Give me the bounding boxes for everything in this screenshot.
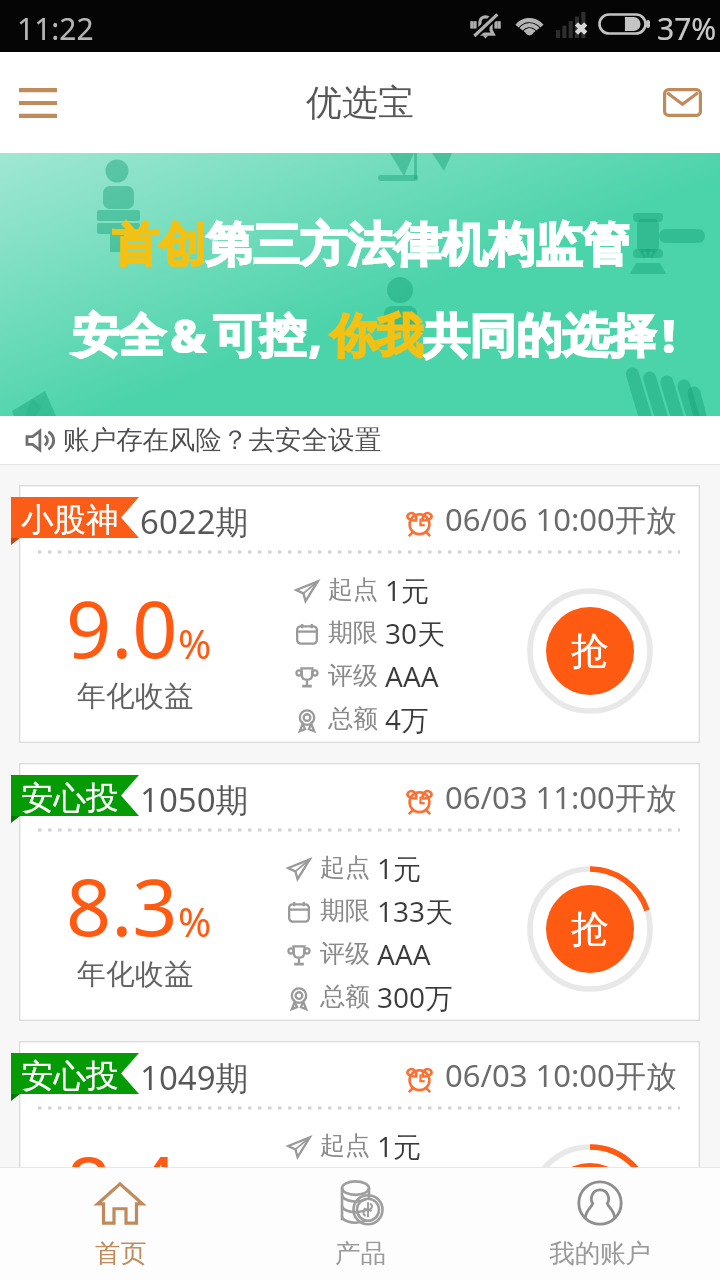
staticText: 8.3: [66, 852, 178, 960]
staticText: 起点: [320, 852, 370, 883]
button[interactable]: 1049期: [19, 1041, 700, 1280]
staticText: AAA: [385, 657, 439, 695]
staticText: 06/03 10:00开放: [445, 1054, 677, 1096]
staticText: 37%: [657, 8, 717, 49]
staticText: ,: [308, 303, 323, 366]
staticText: 我的账户: [549, 1237, 651, 1269]
button[interactable]: 1050期: [19, 763, 700, 1021]
button[interactable]: 账户存在风险？去安全设置: [0, 416, 720, 465]
staticText: 30天: [385, 614, 446, 652]
staticText: 抢: [571, 627, 609, 675]
button[interactable]: 首页: [0, 1168, 240, 1280]
staticText: 产品: [335, 1237, 386, 1269]
staticText: 总额: [320, 1259, 370, 1280]
staticText: 安心投: [21, 1056, 119, 1097]
staticText: 起点: [320, 1130, 370, 1161]
staticText: 账户存在风险？去安全设置: [63, 423, 381, 456]
staticText: 你我: [330, 307, 423, 366]
staticText: 1049期: [140, 1055, 249, 1100]
staticText: 优选宝: [306, 80, 414, 125]
staticText: %: [178, 616, 212, 670]
button[interactable]: Menu: [0, 52, 76, 153]
staticText: 首创: [112, 216, 206, 275]
staticText: &: [170, 303, 208, 366]
button[interactable]: 6022期: [19, 485, 700, 743]
staticText: 期限: [328, 617, 378, 648]
staticText: 首页: [95, 1237, 146, 1269]
staticText: 300万: [377, 978, 454, 1016]
staticText: 1元: [377, 1127, 422, 1165]
staticText: 评级: [320, 1216, 370, 1247]
button[interactable]: Messages: [644, 52, 720, 153]
staticText: 133天: [377, 892, 454, 930]
staticText: 300万: [377, 1256, 454, 1280]
staticText: 共同的选择: [423, 307, 656, 366]
staticText: 抢: [571, 905, 609, 953]
staticText: 1050期: [140, 777, 249, 822]
staticText: 年化收益: [77, 956, 193, 993]
staticText: 小股神: [21, 500, 119, 541]
staticText: 06/03 11:00开放: [445, 776, 677, 818]
staticText: 评级: [328, 660, 378, 691]
staticText: 年化收益: [77, 1234, 193, 1271]
staticText: 总额: [328, 703, 378, 734]
button[interactable]: 抢: [527, 588, 653, 714]
staticText: 评级: [320, 938, 370, 969]
staticText: 06/06 10:00开放: [445, 498, 677, 540]
button[interactable]: 抢: [527, 1144, 653, 1270]
staticText: 安心投: [21, 778, 119, 819]
staticText: 安全: [72, 307, 165, 366]
staticText: 11:22: [17, 8, 94, 49]
staticText: 第三方法律机构监管: [206, 216, 629, 275]
staticText: AAA: [377, 1213, 431, 1251]
staticText: 抢: [571, 1183, 609, 1231]
button[interactable]: 产品: [240, 1168, 480, 1280]
staticText: AAA: [377, 935, 431, 973]
staticText: %: [178, 894, 212, 948]
staticText: 133天: [377, 1170, 454, 1208]
staticText: 9.0: [66, 574, 178, 682]
staticText: 可控: [213, 307, 306, 366]
staticText: 1元: [377, 849, 422, 887]
staticText: 6022期: [140, 499, 249, 544]
staticText: 期限: [320, 895, 370, 926]
staticText: 总额: [320, 981, 370, 1012]
staticText: !: [662, 303, 676, 366]
staticText: 年化收益: [77, 678, 193, 715]
staticText: 1元: [385, 571, 430, 609]
staticText: 4万: [385, 700, 430, 738]
staticText: 起点: [328, 574, 378, 605]
button[interactable]: 抢: [527, 866, 653, 992]
staticText: 8.4: [66, 1130, 178, 1238]
staticText: 期限: [320, 1173, 370, 1204]
button[interactable]: 我的账户: [480, 1168, 720, 1280]
